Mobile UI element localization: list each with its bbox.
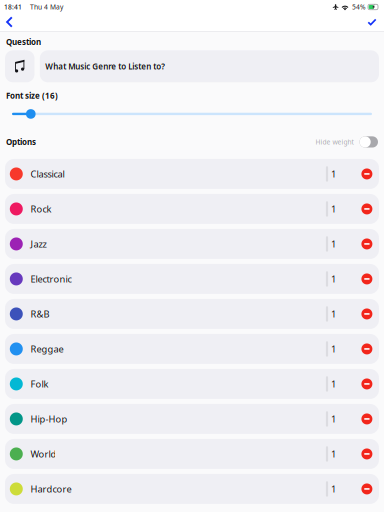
button[interactable]: World — [5, 439, 379, 469]
staticText: Classical — [30, 168, 64, 180]
button[interactable]: What Music Genre to Listen to? — [40, 50, 379, 82]
staticText: Reggae — [30, 343, 63, 355]
staticText: Jazz — [30, 238, 46, 250]
staticText: 1 — [331, 238, 336, 250]
staticText: 1 — [331, 343, 336, 355]
button[interactable]: Electronic — [5, 264, 379, 294]
staticText: Hide weight — [315, 137, 353, 146]
staticText: Folk — [30, 378, 48, 390]
button[interactable]: Folk — [5, 369, 379, 399]
button[interactable]: Reggae — [5, 334, 379, 364]
button[interactable]: Rock — [5, 194, 379, 224]
button[interactable]: Classical — [5, 159, 379, 189]
button[interactable]: Jazz — [5, 229, 379, 259]
staticText: World — [30, 448, 56, 460]
staticText: 1 — [331, 413, 336, 425]
staticText: 1 — [331, 448, 336, 460]
staticText: Rock — [30, 203, 51, 215]
staticText: What Music Genre to Listen to? — [45, 61, 165, 72]
staticText: R&B — [30, 308, 49, 320]
staticText: 54% — [352, 3, 366, 11]
staticText: 1 — [331, 378, 336, 390]
staticText: 1 — [331, 273, 336, 285]
button[interactable]: Back — [0, 13, 22, 31]
button[interactable]: Hip-Hop — [5, 404, 379, 434]
button[interactable]: Save — [358, 13, 384, 31]
staticText: Options — [6, 137, 36, 147]
staticText: Hip-Hop — [30, 413, 67, 425]
staticText: 1 — [331, 308, 336, 320]
staticText: 1 — [331, 203, 336, 215]
staticText: 18:41 — [4, 3, 22, 11]
button[interactable]: Hide weight — [315, 136, 378, 147]
staticText: Font size (16) — [6, 90, 58, 101]
staticText: Thu 4 May — [30, 3, 63, 11]
staticText: Hardcore — [30, 483, 71, 495]
button[interactable]: R&B — [5, 299, 379, 329]
staticText: 1 — [331, 483, 336, 495]
staticText: 1 — [331, 168, 336, 180]
button[interactable]: Hardcore — [5, 474, 379, 504]
staticText: Question — [6, 37, 41, 47]
staticText: Electronic — [30, 273, 71, 285]
